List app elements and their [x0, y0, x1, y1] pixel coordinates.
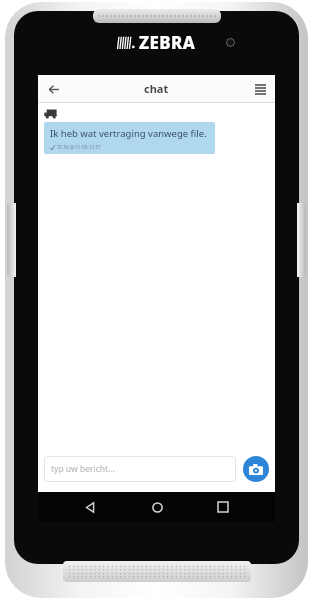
- staticText: Ik heb wat vertraging vanwege file.: [50, 127, 207, 140]
- staticText: ZEBRA: [139, 31, 196, 54]
- staticText: TC 56 @ 01-05-13 37: [57, 144, 101, 150]
- staticText: typ uw bericht...: [51, 463, 115, 475]
- button[interactable]: Home: [142, 492, 172, 522]
- button[interactable]: typ uw bericht...: [44, 456, 236, 482]
- staticText: chat: [144, 81, 169, 96]
- button[interactable]: Ik heb wat vertraging vanwege file.: [44, 122, 215, 154]
- button[interactable]: Back: [42, 78, 64, 100]
- button[interactable]: Camera: [243, 456, 269, 482]
- button[interactable]: Back: [75, 492, 105, 522]
- button[interactable]: Recent apps: [208, 492, 238, 522]
- button[interactable]: Menu: [250, 79, 270, 99]
